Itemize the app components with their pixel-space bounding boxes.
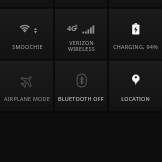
button[interactable]: Airplane mode — [0, 61, 53, 112]
staticText: VERIZON WIRELESS — [68, 39, 95, 53]
staticText: AIRPLANE MODE — [4, 95, 50, 102]
button[interactable]: Wi-Fi SMOOCHIE — [0, 9, 53, 60]
staticText: LOCATION — [121, 95, 150, 102]
staticText: CHARGING, 94% — [113, 43, 158, 50]
staticText: BLUETOOTH OFF — [58, 95, 104, 102]
staticText: SMOOCHIE — [12, 43, 43, 50]
button[interactable]: Verizon Wireless — [54, 9, 107, 60]
button[interactable]: Bluetooth off — [54, 61, 107, 112]
button[interactable]: Charging, 94% — [108, 9, 161, 60]
staticText: 4G — [67, 23, 77, 33]
button[interactable]: Location — [108, 61, 161, 112]
